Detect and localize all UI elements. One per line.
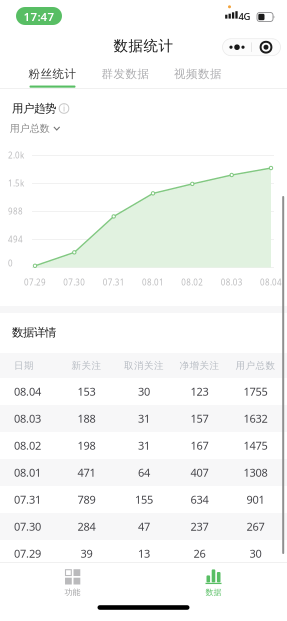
button[interactable]: Close <box>251 39 280 56</box>
staticText: 07.30 <box>14 519 41 534</box>
staticText: 08.03 <box>221 277 243 288</box>
button[interactable]: 视频数据 <box>163 61 233 87</box>
staticText: 123 <box>190 384 208 399</box>
staticText: 155 <box>135 492 153 507</box>
staticText: 988 <box>8 206 23 217</box>
button[interactable]: 群发数据 <box>90 61 160 87</box>
staticText: 1755 <box>243 384 267 399</box>
staticText: 284 <box>77 519 95 534</box>
staticText: 用户趋势 <box>12 101 56 116</box>
staticText: 08.03 <box>14 411 41 426</box>
staticText: 2.0k <box>8 150 24 161</box>
staticText: 数据详情 <box>12 325 56 340</box>
staticText: 4G <box>238 10 250 23</box>
staticText: 群发数据 <box>101 67 149 81</box>
staticText: 08.02 <box>181 277 203 288</box>
staticText: 157 <box>190 411 208 426</box>
staticText: 08.04 <box>14 384 41 399</box>
staticText: 08.01 <box>14 465 41 480</box>
staticText: 407 <box>190 465 208 480</box>
staticText: 237 <box>190 519 208 534</box>
button[interactable]: 粉丝统计 <box>17 61 87 87</box>
staticText: 39 <box>80 546 92 561</box>
staticText: 1475 <box>243 438 267 453</box>
staticText: 26 <box>193 546 205 561</box>
staticText: 31 <box>138 411 150 426</box>
staticText: 取消关注 <box>124 359 164 371</box>
staticText: 功能 <box>64 587 80 597</box>
button[interactable]: 数据 <box>173 563 253 603</box>
staticText: 用户总数 <box>235 359 275 371</box>
staticText: 用户总数 <box>10 122 50 135</box>
staticText: 08.01 <box>142 277 164 288</box>
staticText: 30 <box>249 546 261 561</box>
staticText: 07.31 <box>14 492 41 507</box>
staticText: 数据 <box>205 587 221 597</box>
staticText: 64 <box>138 465 150 480</box>
staticText: 267 <box>246 519 264 534</box>
staticText: 净增关注 <box>179 359 219 371</box>
staticText: 0 <box>8 258 13 269</box>
staticText: 471 <box>77 465 95 480</box>
staticText: 47 <box>138 519 150 534</box>
staticText: 198 <box>77 438 95 453</box>
staticText: 视频数据 <box>174 67 222 81</box>
staticText: 30 <box>138 384 150 399</box>
staticText: 日期 <box>14 359 34 371</box>
button[interactable]: 用户总数 <box>10 120 60 136</box>
staticText: 粉丝统计 <box>28 67 76 81</box>
button[interactable]: 功能 <box>32 563 112 603</box>
staticText: 153 <box>77 384 95 399</box>
button[interactable]: More <box>222 39 251 56</box>
staticText: 数据统计 <box>113 37 173 55</box>
staticText: 07.30 <box>63 277 85 288</box>
staticText: 188 <box>77 411 95 426</box>
staticText: 08.02 <box>14 438 41 453</box>
staticText: 07.29 <box>24 277 46 288</box>
staticText: 07.29 <box>14 546 41 561</box>
staticText: 新关注 <box>71 359 101 371</box>
staticText: 31 <box>138 438 150 453</box>
button[interactable]: Info <box>57 101 71 115</box>
staticText: 494 <box>8 234 23 245</box>
staticText: 17:47 <box>23 9 54 24</box>
staticText: i <box>63 103 65 114</box>
staticText: 1632 <box>243 411 267 426</box>
staticText: 901 <box>246 492 264 507</box>
staticText: 167 <box>190 438 208 453</box>
staticText: 789 <box>77 492 95 507</box>
staticText: 1.5k <box>8 178 24 189</box>
staticText: 1308 <box>243 465 267 480</box>
staticText: 08.04 <box>260 277 282 288</box>
staticText: 13 <box>138 546 150 561</box>
staticText: 07.31 <box>103 277 125 288</box>
staticText: 634 <box>190 492 208 507</box>
